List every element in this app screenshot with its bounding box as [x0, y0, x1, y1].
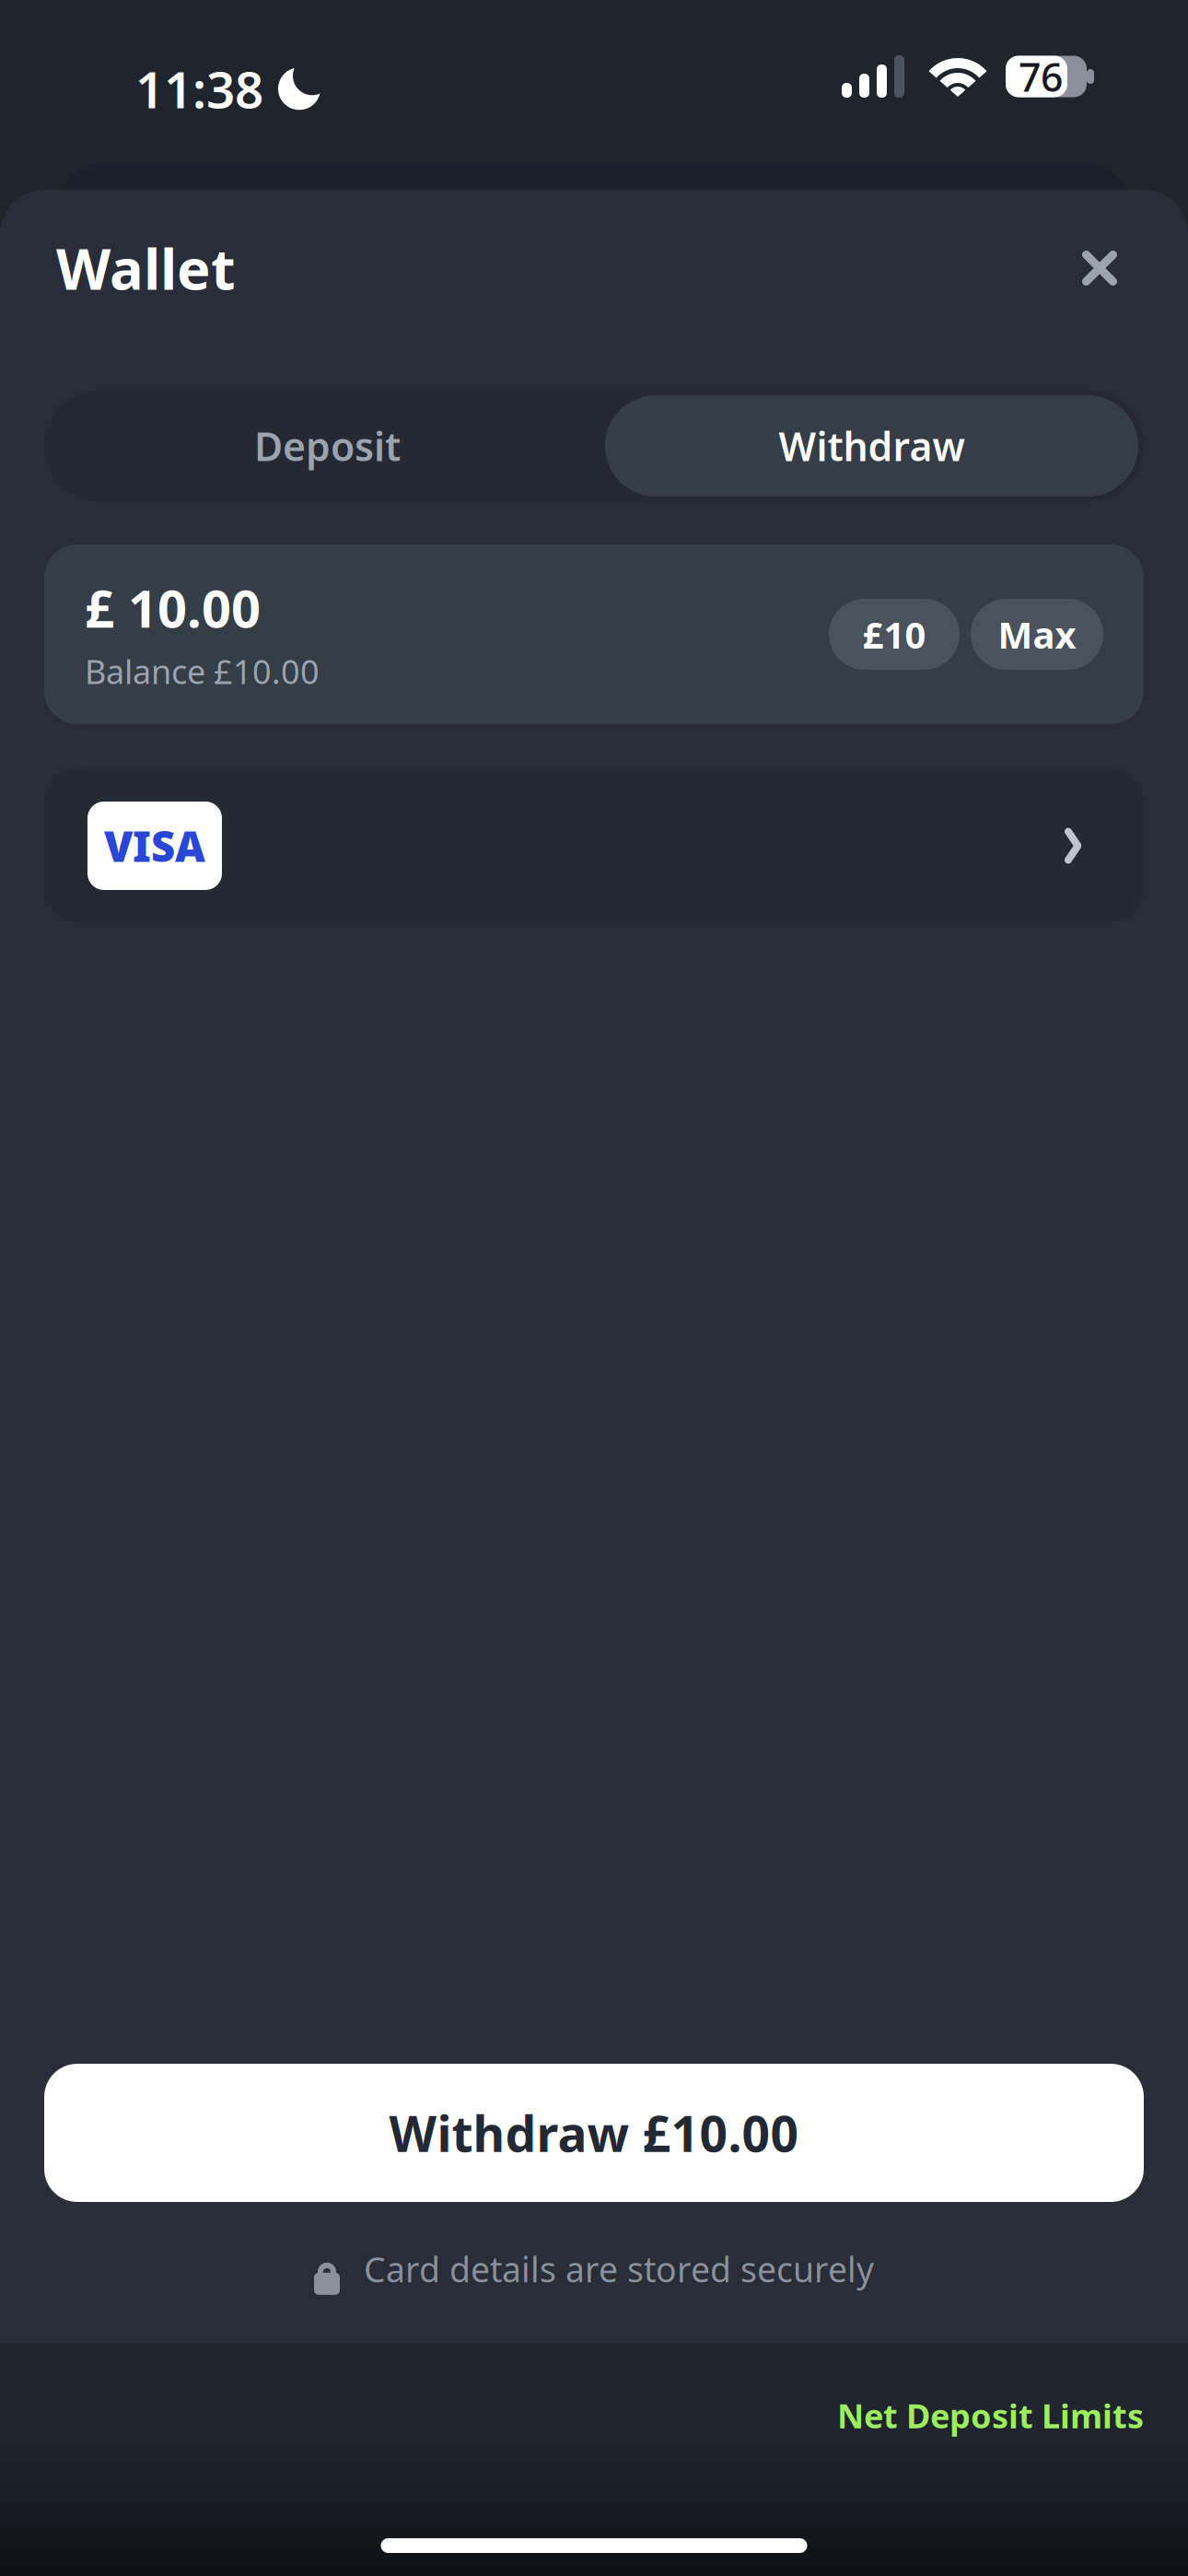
staticText: £10: [862, 610, 926, 659]
button[interactable]: Close: [1057, 226, 1142, 310]
staticText: Wallet: [56, 230, 236, 305]
button[interactable]: VISA: [44, 769, 1144, 922]
button[interactable]: Withdraw: [605, 395, 1138, 497]
staticText: Withdraw: [779, 420, 965, 472]
staticText: Net Deposit Limits: [837, 2394, 1144, 2438]
staticText: Deposit: [254, 420, 401, 472]
button[interactable]: Deposit: [50, 395, 605, 497]
staticText: Max: [998, 610, 1076, 659]
staticText: £ 10.00: [85, 573, 261, 642]
button[interactable]: Withdraw £10.00: [44, 2064, 1144, 2202]
staticText: Balance £10.00: [85, 649, 320, 693]
staticText: Card details are stored securely: [364, 2246, 874, 2292]
staticText: VISA: [104, 818, 205, 873]
button[interactable]: Net Deposit Limits: [837, 2394, 1144, 2438]
button[interactable]: Max: [971, 599, 1103, 670]
staticText: Withdraw £10.00: [389, 2100, 799, 2165]
staticText: 11:38: [135, 55, 263, 122]
staticText: 76: [1019, 50, 1063, 103]
button[interactable]: £10: [829, 599, 960, 670]
